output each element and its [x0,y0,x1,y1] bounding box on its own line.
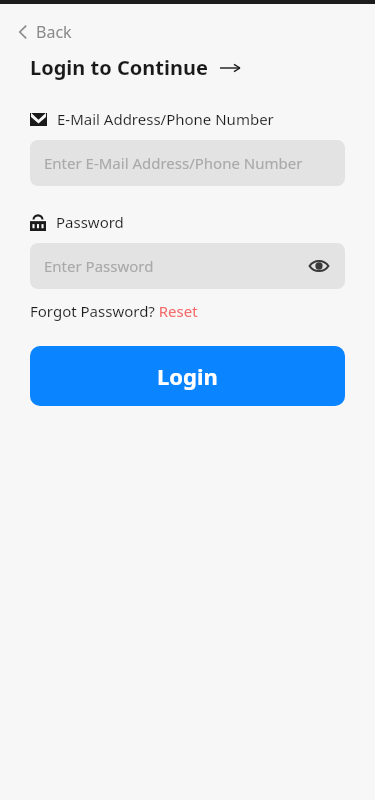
button[interactable]: Back [14,18,76,46]
button[interactable]: Login [30,346,345,406]
button[interactable]: Enter Password [30,243,345,289]
button[interactable]: Show password [307,257,331,275]
staticText: Login [157,361,218,391]
staticText: E-Mail Address/Phone Number [57,109,274,129]
staticText: Login to Continue [30,54,208,81]
button[interactable]: Forgot Password? Reset [30,301,198,321]
staticText: Back [36,21,72,43]
button[interactable]: Enter E-Mail Address/Phone Number [30,140,345,186]
staticText: Enter E-Mail Address/Phone Number [44,153,303,173]
staticText: Enter Password [44,256,154,276]
staticText: Password [56,212,124,232]
staticText: Forgot Password? Reset [30,301,198,321]
